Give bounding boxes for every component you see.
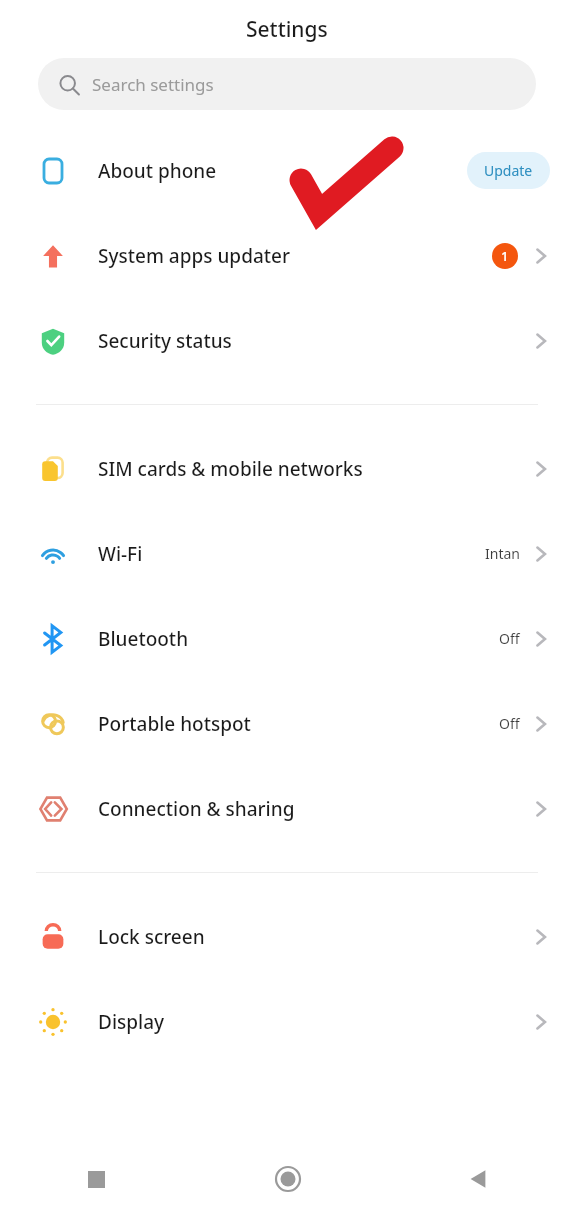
- button[interactable]: System apps updater: [0, 213, 574, 298]
- button[interactable]: Lock screen: [0, 894, 574, 979]
- staticText: Connection & sharing: [98, 796, 532, 822]
- staticText: Update: [484, 161, 533, 180]
- staticText: Bluetooth: [98, 626, 499, 652]
- button[interactable]: Back: [383, 1148, 574, 1210]
- staticText: Wi-Fi: [98, 541, 485, 567]
- staticText: System apps updater: [98, 243, 492, 269]
- staticText: Security status: [98, 328, 532, 354]
- button[interactable]: Connection & sharing: [0, 766, 574, 851]
- staticText: Settings: [246, 15, 328, 44]
- button[interactable]: Portable hotspot: [0, 681, 574, 766]
- staticText: About phone: [98, 158, 467, 184]
- staticText: 1: [501, 247, 509, 265]
- button[interactable]: Recent apps: [0, 1148, 192, 1210]
- button[interactable]: SIM cards & mobile networks: [0, 426, 574, 511]
- button[interactable]: Home: [192, 1148, 383, 1210]
- staticText: Off: [499, 629, 520, 648]
- staticText: Off: [499, 714, 520, 733]
- button[interactable]: Security status: [0, 298, 574, 383]
- staticText: Lock screen: [98, 924, 532, 950]
- button[interactable]: Wi-Fi: [0, 511, 574, 596]
- staticText: Display: [98, 1009, 532, 1035]
- staticText: Intan: [485, 544, 520, 563]
- button[interactable]: Update: [467, 152, 550, 189]
- button[interactable]: About phone: [0, 128, 574, 213]
- button[interactable]: Bluetooth: [0, 596, 574, 681]
- staticText: Search settings: [92, 73, 214, 96]
- button[interactable]: Search settings: [38, 58, 536, 110]
- staticText: SIM cards & mobile networks: [98, 456, 532, 482]
- button[interactable]: Display: [0, 979, 574, 1064]
- staticText: Portable hotspot: [98, 711, 499, 737]
